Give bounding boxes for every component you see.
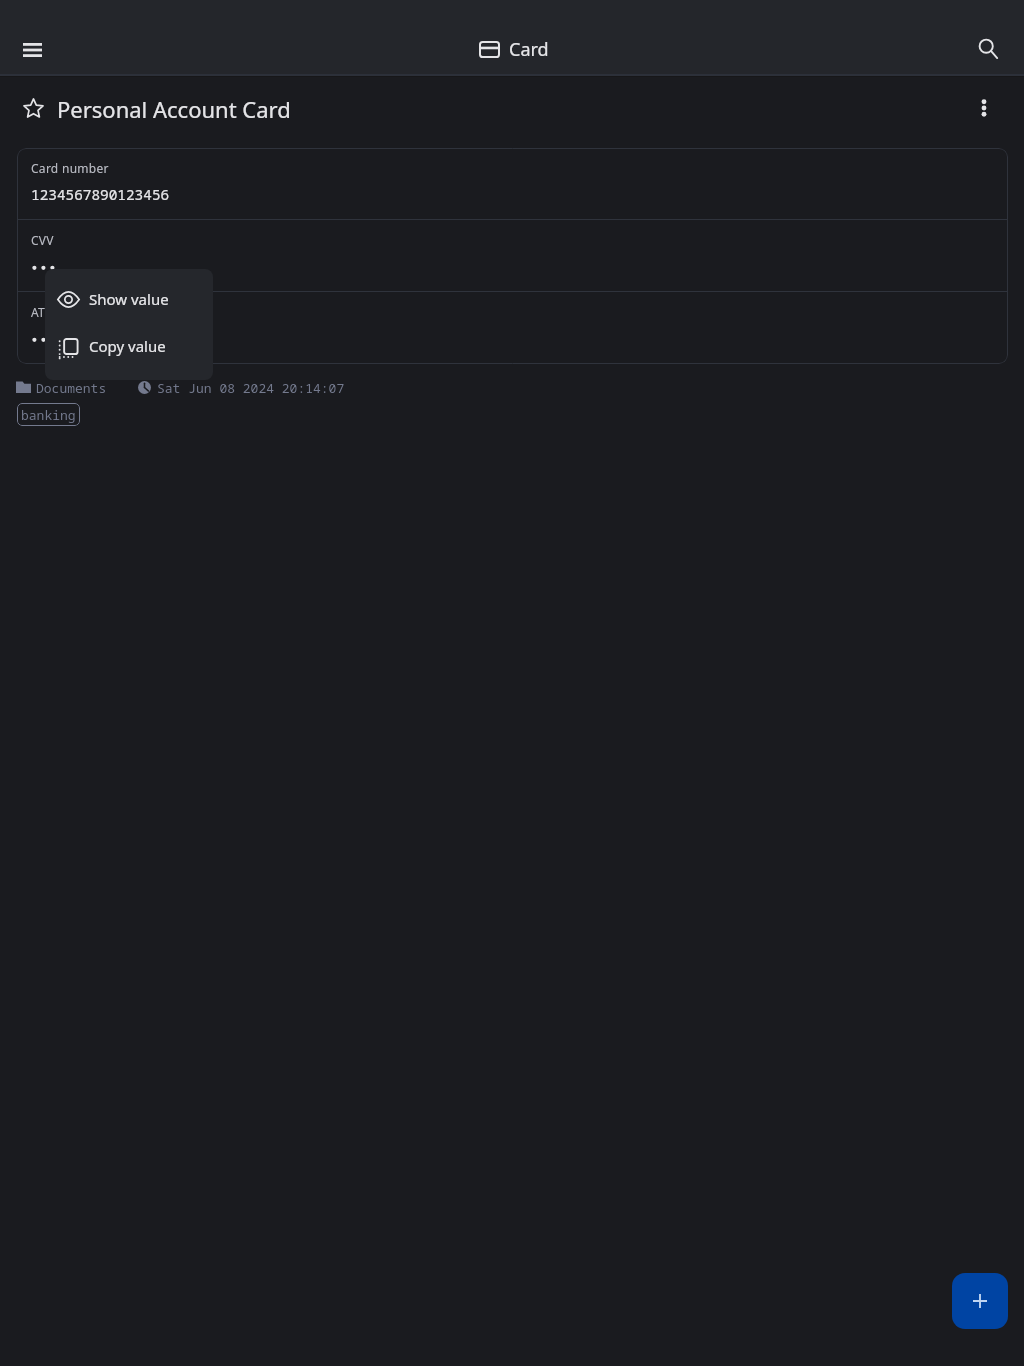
button[interactable]: Menu [10, 28, 54, 72]
staticText: ATM PIN [31, 304, 81, 320]
staticText: Card number [31, 160, 109, 176]
button[interactable]: Add [952, 1273, 1008, 1329]
staticText: banking [21, 406, 76, 424]
button[interactable]: Favourite [13, 88, 53, 128]
button[interactable]: CVV [17, 220, 1008, 291]
button[interactable]: Copy value [45, 322, 213, 369]
button[interactable]: banking [17, 403, 80, 426]
staticText: CVV [31, 232, 54, 248]
button[interactable]: Search [966, 27, 1010, 71]
button[interactable]: Show value [45, 275, 213, 322]
staticText: Personal Account Card [57, 94, 291, 124]
button[interactable]: ATM PIN [17, 292, 1008, 363]
button[interactable]: Card number [17, 148, 1008, 219]
staticText: 1234567890123456 [31, 185, 170, 205]
button[interactable]: More options [964, 88, 1004, 128]
staticText: Show value [89, 289, 169, 309]
staticText: Copy value [89, 336, 166, 356]
staticText: Sat Jun 08 2024 20:14:07 [157, 379, 345, 397]
staticText: Documents [36, 379, 107, 397]
staticText: Card [509, 37, 549, 62]
